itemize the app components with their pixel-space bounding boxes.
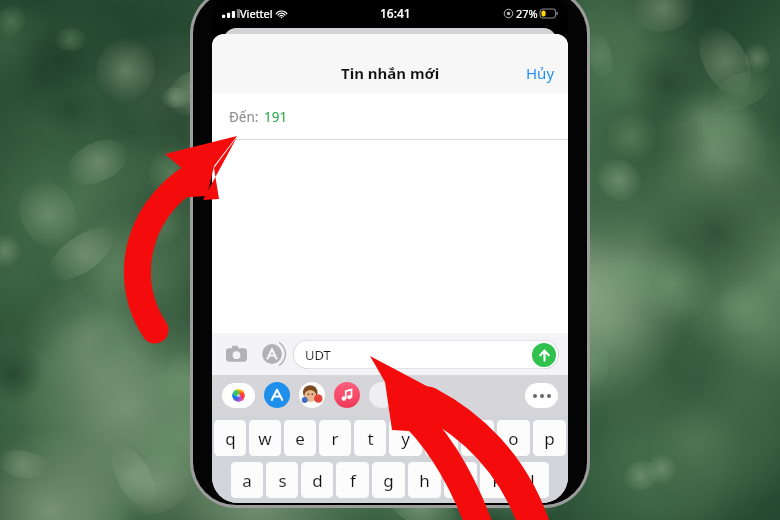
button[interactable]: j bbox=[444, 462, 477, 498]
staticText: Hủy bbox=[526, 63, 555, 83]
button[interactable]: Memoji stickers bbox=[299, 382, 325, 408]
staticText: 191 bbox=[264, 108, 288, 126]
button[interactable]: UDT bbox=[293, 340, 559, 369]
staticText: w bbox=[258, 427, 272, 450]
staticText: 27% bbox=[516, 6, 538, 21]
button[interactable]: q bbox=[214, 420, 246, 456]
button[interactable]: Photos bbox=[222, 383, 255, 408]
button[interactable]: t bbox=[354, 420, 386, 456]
button[interactable]: o bbox=[497, 420, 530, 456]
button[interactable]: k bbox=[480, 462, 513, 498]
staticText: y bbox=[401, 427, 410, 450]
button[interactable]: More apps bbox=[525, 383, 558, 408]
staticText: f bbox=[350, 469, 356, 492]
button[interactable]: f bbox=[336, 462, 369, 498]
button[interactable]: Send bbox=[532, 343, 556, 367]
button[interactable]: Sticker app bbox=[404, 382, 430, 408]
staticText: u bbox=[436, 427, 447, 450]
button[interactable]: Sticker app bbox=[369, 382, 395, 408]
staticText: k bbox=[492, 469, 502, 492]
button[interactable]: Đến: bbox=[212, 94, 568, 139]
button[interactable]: e bbox=[284, 420, 316, 456]
staticText: 16:41 bbox=[380, 5, 411, 21]
button[interactable]: s bbox=[266, 462, 298, 498]
button[interactable]: w bbox=[249, 420, 281, 456]
button[interactable]: a bbox=[231, 462, 263, 498]
staticText: o bbox=[508, 427, 519, 450]
button[interactable]: g bbox=[372, 462, 405, 498]
staticText: e bbox=[295, 427, 305, 450]
staticText: Đến: bbox=[229, 108, 259, 126]
staticText: l bbox=[530, 469, 535, 492]
button[interactable]: i bbox=[461, 420, 494, 456]
button[interactable]: l bbox=[516, 462, 549, 498]
staticText: a bbox=[242, 469, 252, 492]
staticText: Tin nhắn mới bbox=[341, 63, 440, 83]
staticText: s bbox=[278, 469, 287, 492]
button[interactable]: App Store bbox=[264, 382, 290, 408]
button[interactable]: App Store bbox=[257, 339, 287, 369]
staticText: r bbox=[331, 427, 339, 450]
staticText: UDT bbox=[305, 346, 331, 364]
button[interactable]: Music bbox=[334, 382, 360, 408]
staticText: Viettel bbox=[240, 6, 273, 21]
staticText: d bbox=[312, 469, 323, 492]
button[interactable]: y bbox=[389, 420, 422, 456]
button[interactable]: u bbox=[425, 420, 458, 456]
staticText: h bbox=[419, 469, 430, 492]
staticText: t bbox=[367, 427, 374, 450]
staticText: q bbox=[225, 427, 236, 450]
button[interactable]: p bbox=[533, 420, 566, 456]
button[interactable]: h bbox=[408, 462, 441, 498]
button[interactable]: Camera bbox=[221, 339, 251, 369]
staticText: p bbox=[544, 427, 555, 450]
button[interactable]: r bbox=[319, 420, 351, 456]
button[interactable]: Hủy bbox=[513, 56, 568, 90]
button[interactable]: d bbox=[301, 462, 333, 498]
staticText: g bbox=[383, 469, 394, 492]
